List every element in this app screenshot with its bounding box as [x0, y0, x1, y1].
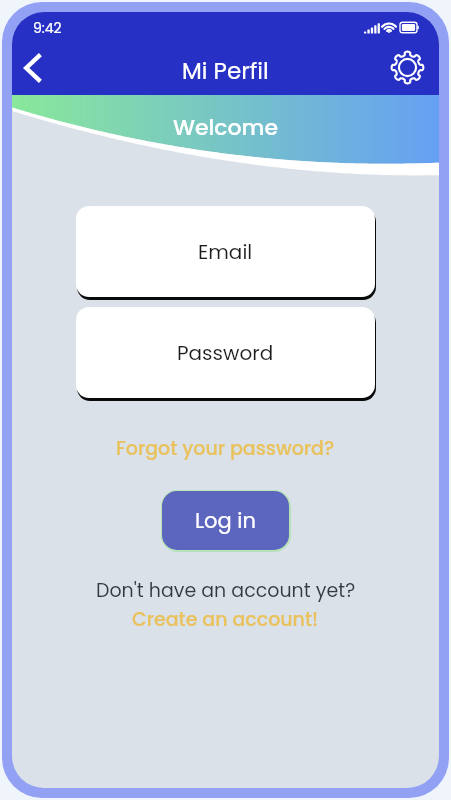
staticText: Email — [198, 238, 253, 266]
button[interactable]: Forgot your password? — [110, 432, 341, 465]
button[interactable]: Email — [76, 206, 375, 297]
button[interactable]: Back — [12, 47, 53, 89]
button[interactable]: Create an account! — [126, 604, 325, 635]
button[interactable]: Password — [76, 307, 375, 398]
staticText: Password — [177, 339, 274, 367]
staticText: Mi Perfil — [182, 55, 269, 87]
button[interactable]: Log in — [162, 491, 289, 550]
staticText: Log in — [195, 506, 256, 535]
button[interactable]: Settings — [385, 45, 429, 89]
staticText: Welcome — [173, 112, 279, 143]
staticText: Don't have an account yet? — [96, 577, 356, 604]
staticText: 9:42 — [33, 18, 62, 38]
